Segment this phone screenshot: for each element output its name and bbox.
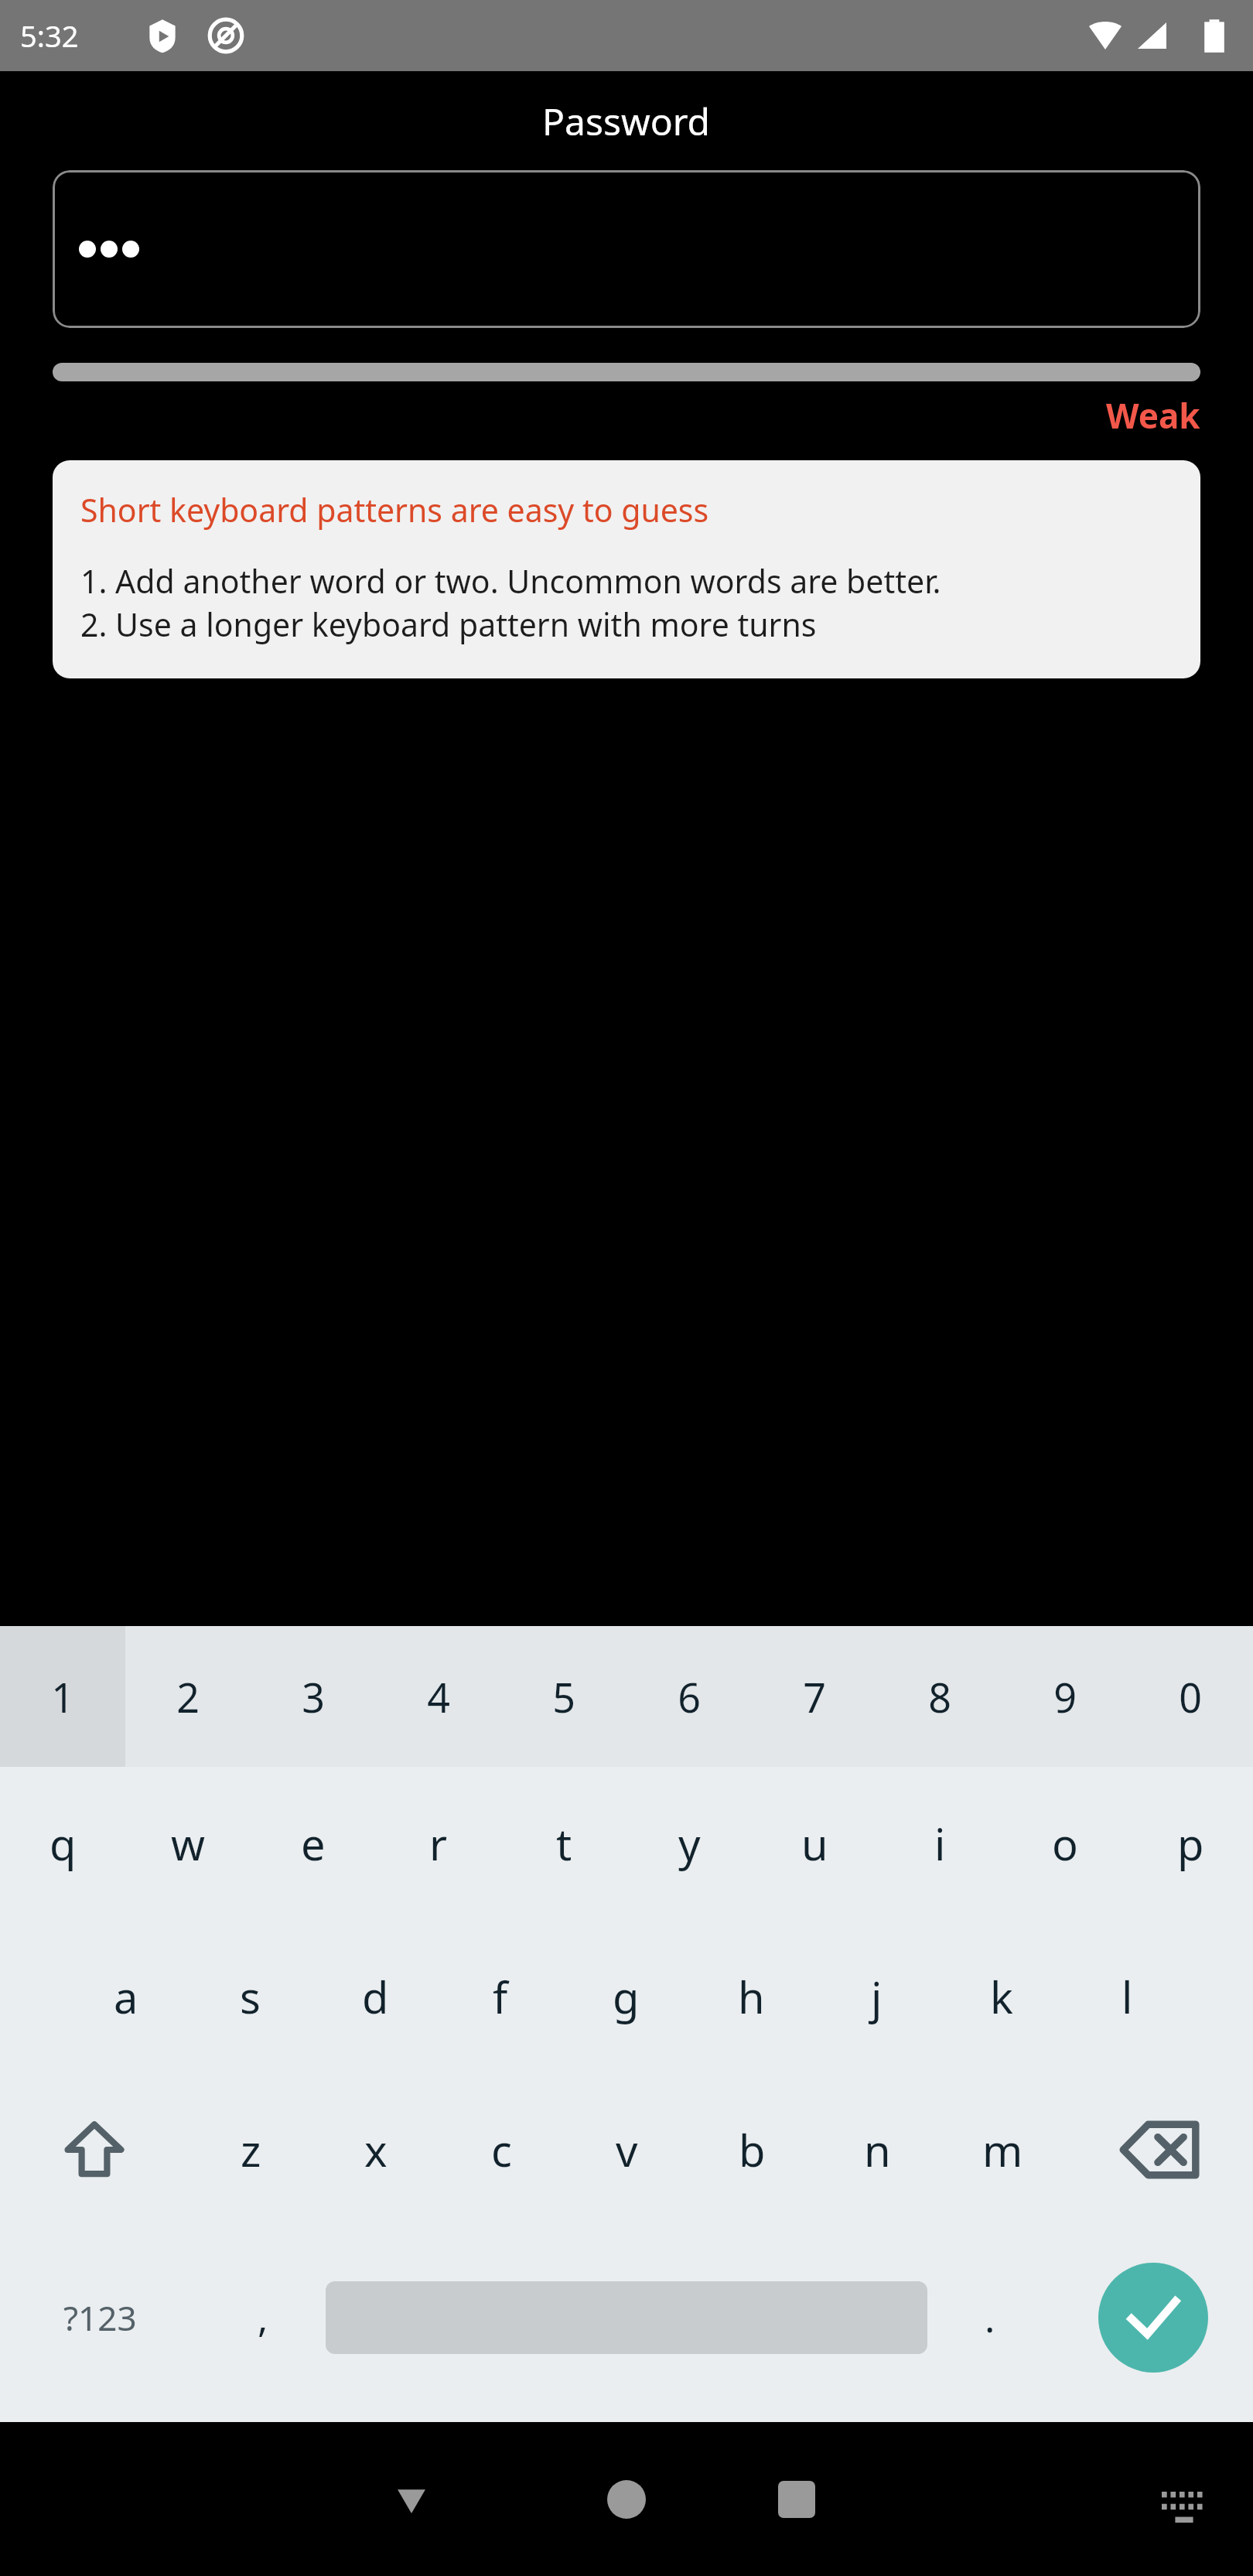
button[interactable]: m [940, 2073, 1065, 2226]
button[interactable]: z [188, 2073, 313, 2226]
staticText: s [240, 1967, 261, 2026]
button[interactable]: y [626, 1767, 752, 1920]
button[interactable]: s [188, 1920, 312, 2073]
staticText: 7 [803, 1669, 826, 1724]
button[interactable]: g [563, 1920, 688, 2073]
staticText: d [362, 1967, 389, 2026]
button[interactable]: 0 [1128, 1626, 1253, 1767]
staticText: ?123 [63, 2294, 137, 2341]
button[interactable]: . [927, 2226, 1053, 2408]
button[interactable]: f [438, 1920, 563, 2073]
staticText: 4 [427, 1669, 450, 1724]
button[interactable]: e [251, 1767, 376, 1920]
staticText: 9 [1053, 1669, 1077, 1724]
button[interactable]: p [1128, 1767, 1253, 1920]
staticText: Weak [1106, 392, 1200, 439]
button[interactable]: q [0, 1767, 125, 1920]
staticText: 1. Add another word or two. Uncommon wor… [80, 559, 941, 603]
button[interactable]: 7 [752, 1626, 877, 1767]
staticText: c [491, 2120, 512, 2179]
staticText: 5:32 [20, 15, 79, 56]
staticText: v [616, 2120, 638, 2179]
staticText: t [556, 1814, 572, 1873]
button[interactable]: 5 [501, 1626, 626, 1767]
button[interactable]: , [200, 2226, 326, 2408]
button[interactable]: Home [580, 2453, 673, 2546]
staticText: a [114, 1967, 138, 2026]
button[interactable]: n [814, 2073, 940, 2226]
button[interactable]: 9 [1002, 1626, 1128, 1767]
button[interactable]: j [814, 1920, 939, 2073]
button[interactable]: 3 [251, 1626, 376, 1767]
button[interactable] [53, 170, 1200, 328]
staticText: Short keyboard patterns are easy to gues… [80, 488, 709, 531]
staticText: f [493, 1967, 508, 2026]
staticText: 6 [678, 1669, 701, 1724]
staticText: p [1177, 1814, 1204, 1873]
staticText: g [613, 1967, 640, 2026]
button[interactable]: Backspace [1065, 2073, 1253, 2226]
staticText: 5 [552, 1669, 575, 1724]
staticText: 2. Use a longer keyboard pattern with mo… [80, 603, 817, 646]
staticText: n [864, 2120, 891, 2179]
button[interactable]: Short keyboard patterns are easy to gues… [53, 460, 1200, 678]
staticText: k [990, 1967, 1013, 2026]
button[interactable]: Shift [0, 2073, 188, 2226]
button[interactable]: b [689, 2073, 814, 2226]
button[interactable]: h [688, 1920, 814, 2073]
button[interactable]: ?123 [0, 2226, 200, 2408]
staticText: 3 [302, 1669, 325, 1724]
staticText: l [1122, 1967, 1133, 2026]
button[interactable]: d [312, 1920, 438, 2073]
staticText: x [364, 2120, 388, 2179]
button[interactable]: i [877, 1767, 1002, 1920]
staticText: r [429, 1814, 448, 1873]
staticText: q [50, 1814, 77, 1873]
staticText: m [982, 2120, 1023, 2179]
button[interactable]: 1 [0, 1626, 125, 1767]
staticText: . [985, 2291, 995, 2344]
button[interactable]: x [313, 2073, 439, 2226]
staticText: 1 [51, 1669, 74, 1724]
staticText: Password [542, 96, 711, 146]
staticText: j [871, 1967, 883, 2026]
button[interactable]: a [63, 1920, 188, 2073]
button[interactable]: l [1064, 1920, 1190, 2073]
staticText: y [678, 1814, 701, 1873]
button[interactable]: k [939, 1920, 1064, 2073]
button[interactable] [326, 2226, 927, 2408]
staticText: b [739, 2120, 766, 2179]
staticText: w [171, 1814, 206, 1873]
staticText: i [934, 1814, 946, 1873]
button[interactable]: r [376, 1767, 501, 1920]
button[interactable]: 8 [877, 1626, 1002, 1767]
button[interactable]: 6 [626, 1626, 752, 1767]
staticText: 2 [176, 1669, 200, 1724]
button[interactable]: u [752, 1767, 877, 1920]
staticText: o [1052, 1814, 1078, 1873]
staticText: h [738, 1967, 765, 2026]
button[interactable]: o [1002, 1767, 1128, 1920]
button[interactable]: v [564, 2073, 689, 2226]
staticText: 8 [928, 1669, 951, 1724]
staticText: z [241, 2120, 261, 2179]
button[interactable]: w [125, 1767, 251, 1920]
staticText: e [301, 1814, 326, 1873]
button[interactable]: Hide keyboard [232, 2422, 1253, 2576]
button[interactable]: t [501, 1767, 626, 1920]
button[interactable]: c [439, 2073, 564, 2226]
button[interactable]: 4 [376, 1626, 501, 1767]
button[interactable]: Recents [750, 2453, 843, 2546]
staticText: u [801, 1814, 828, 1873]
button[interactable]: Switch keyboard [1142, 2466, 1227, 2551]
staticText: 0 [1179, 1669, 1202, 1724]
button[interactable]: Enter [1053, 2226, 1253, 2408]
staticText: , [258, 2291, 268, 2344]
button[interactable]: 2 [125, 1626, 251, 1767]
